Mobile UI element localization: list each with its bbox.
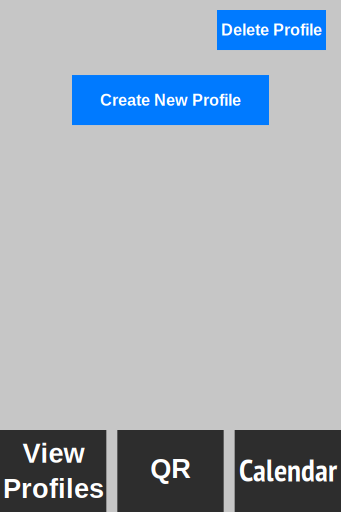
staticText: Create New Profile: [100, 91, 241, 109]
staticText: View Profiles: [3, 438, 104, 504]
staticText: Delete Profile: [221, 21, 322, 39]
staticText: QR: [150, 453, 191, 484]
button[interactable]: QR: [117, 430, 224, 512]
button[interactable]: Calendar: [235, 430, 341, 512]
button[interactable]: View Profiles: [0, 430, 106, 512]
staticText: Calendar: [239, 450, 337, 490]
button[interactable]: Create New Profile: [72, 75, 269, 125]
button[interactable]: Delete Profile: [217, 10, 326, 50]
